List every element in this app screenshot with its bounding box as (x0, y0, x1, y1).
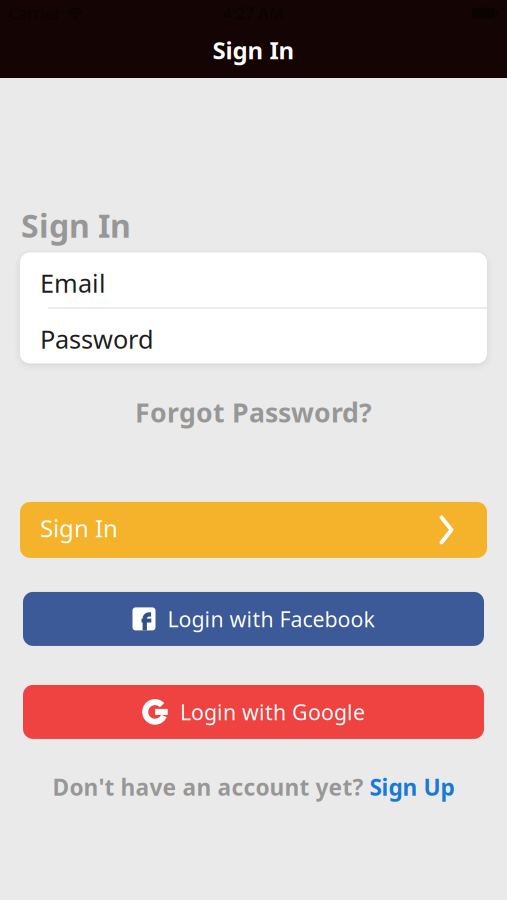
staticText: 4:27 AM (223, 2, 284, 24)
button[interactable]: Email (20, 252, 487, 307)
staticText: Forgot Password? (135, 394, 372, 430)
button[interactable]: Sign In (20, 502, 487, 558)
staticText: Login with Facebook (167, 605, 374, 633)
staticText: Sign In (40, 512, 118, 544)
button[interactable]: Sign Up (369, 772, 454, 802)
staticText: Sign In (21, 204, 131, 246)
button[interactable]: Login with Google (23, 685, 484, 739)
staticText: Email (40, 266, 106, 300)
button[interactable]: Login with Facebook (23, 592, 484, 646)
staticText: Login with Google (180, 698, 365, 726)
button[interactable]: Forgot Password? (135, 394, 372, 430)
staticText: Don't have an account yet? (52, 772, 363, 802)
staticText: Password (40, 322, 154, 356)
staticText: Sign In (212, 34, 294, 66)
staticText: Sign Up (369, 772, 454, 802)
button[interactable]: Password (20, 308, 487, 363)
